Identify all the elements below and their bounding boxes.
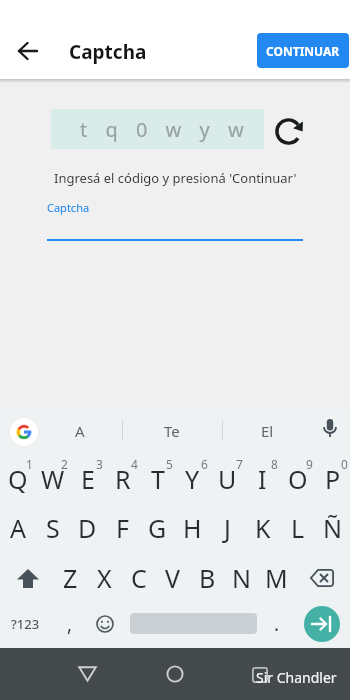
staticText: 4 xyxy=(131,456,138,472)
staticText: X xyxy=(97,561,112,595)
button[interactable]: Q xyxy=(0,460,35,498)
staticText: , xyxy=(67,611,73,637)
staticText: J xyxy=(224,511,231,545)
staticText: Captcha xyxy=(69,39,147,65)
staticText: I xyxy=(258,462,267,496)
staticText: O xyxy=(288,462,308,496)
button[interactable]: A xyxy=(0,509,35,547)
staticText: . xyxy=(274,611,280,637)
staticText: S xyxy=(46,511,60,545)
staticText: F xyxy=(116,511,129,545)
staticText: M xyxy=(265,561,288,595)
staticText: Sir Chandler xyxy=(256,668,337,687)
button[interactable]: J xyxy=(210,509,245,547)
button[interactable]: L xyxy=(280,509,315,547)
staticText: CONTINUAR xyxy=(266,43,340,59)
staticText: V xyxy=(165,561,181,595)
staticText: 5 xyxy=(166,456,173,472)
button[interactable]: G xyxy=(140,509,175,547)
button[interactable]: E xyxy=(70,460,105,498)
staticText: T xyxy=(151,462,165,496)
button[interactable]: , xyxy=(56,606,84,642)
button[interactable] xyxy=(318,418,342,442)
button[interactable] xyxy=(304,606,340,642)
button[interactable]: El xyxy=(242,418,292,444)
staticText: U xyxy=(218,462,237,496)
button[interactable]: ?123 xyxy=(4,606,46,642)
button[interactable]: O xyxy=(280,460,315,498)
staticText: R xyxy=(115,462,131,496)
staticText: El xyxy=(261,421,274,441)
staticText: 2 xyxy=(61,456,68,472)
button[interactable] xyxy=(157,656,193,692)
button[interactable]: W xyxy=(35,460,70,498)
button[interactable] xyxy=(300,559,344,597)
staticText: A xyxy=(75,421,85,441)
button[interactable] xyxy=(69,656,105,692)
staticText: 9 xyxy=(306,456,313,472)
button[interactable]: C xyxy=(122,559,156,597)
button[interactable]: Te xyxy=(147,418,197,444)
staticText: Z xyxy=(63,561,78,595)
button[interactable]: Y xyxy=(175,460,210,498)
button[interactable] xyxy=(6,559,50,597)
staticText: 6 xyxy=(201,456,208,472)
staticText: t q 0 w y w xyxy=(80,116,251,143)
staticText: L xyxy=(291,511,305,545)
button[interactable]: Ñ xyxy=(315,509,350,547)
button[interactable]: B xyxy=(190,559,224,597)
staticText: 8 xyxy=(271,456,278,472)
button[interactable] xyxy=(12,35,44,67)
button[interactable]: N xyxy=(225,559,259,597)
button[interactable]: T xyxy=(140,460,175,498)
button[interactable]: CONTINUAR xyxy=(257,33,349,68)
staticText: Ingresá el código y presioná 'Continuar' xyxy=(54,169,297,187)
button[interactable]: H xyxy=(175,509,210,547)
staticText: 1 xyxy=(26,456,33,472)
staticText: B xyxy=(199,561,216,595)
button[interactable]: P xyxy=(315,460,350,498)
staticText: K xyxy=(255,511,271,545)
staticText: Captcha xyxy=(47,200,90,215)
staticText: E xyxy=(81,462,95,496)
button[interactable]: F xyxy=(105,509,140,547)
button[interactable]: V xyxy=(156,559,190,597)
staticText: D xyxy=(78,511,97,545)
button[interactable] xyxy=(10,418,38,446)
staticText: Q xyxy=(8,462,28,496)
button[interactable]: I xyxy=(245,460,280,498)
button[interactable]: . xyxy=(263,606,291,642)
staticText: 0 xyxy=(341,456,348,472)
button[interactable] xyxy=(88,606,122,642)
staticText: N xyxy=(232,561,252,595)
button[interactable]: X xyxy=(87,559,121,597)
button[interactable]: K xyxy=(245,509,280,547)
staticText: C xyxy=(131,561,147,595)
staticText: Te xyxy=(164,421,180,441)
button[interactable]: M xyxy=(259,559,293,597)
staticText: W xyxy=(41,462,65,496)
staticText: Y xyxy=(185,462,200,496)
button[interactable]: D xyxy=(70,509,105,547)
staticText: A xyxy=(10,511,26,545)
button[interactable]: A xyxy=(55,418,105,444)
button[interactable]: R xyxy=(105,460,140,498)
button[interactable]: U xyxy=(210,460,245,498)
staticText: H xyxy=(183,511,202,545)
button[interactable]: Z xyxy=(53,559,87,597)
staticText: ?123 xyxy=(11,615,40,633)
staticText: P xyxy=(325,462,341,496)
staticText: 7 xyxy=(236,456,243,472)
staticText: G xyxy=(148,511,167,545)
button[interactable]: S xyxy=(35,509,70,547)
staticText: Ñ xyxy=(323,511,343,545)
staticText: 3 xyxy=(96,456,103,472)
button[interactable] xyxy=(274,117,303,146)
